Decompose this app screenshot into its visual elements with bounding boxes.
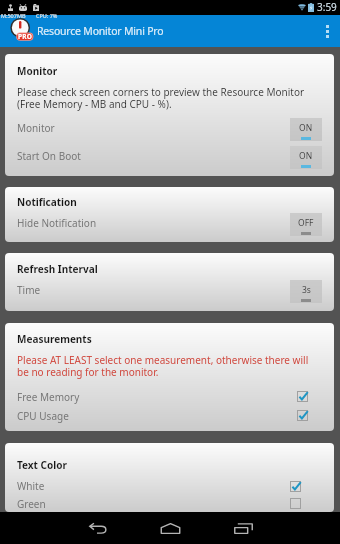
staticText: CPU Usage — [17, 409, 69, 423]
staticText: CPU: 7% — [36, 12, 58, 19]
staticText: ON — [299, 150, 313, 162]
button[interactable]: Home — [145, 512, 195, 544]
button[interactable]: Back — [73, 512, 123, 544]
staticText: Text Color — [17, 458, 67, 472]
button[interactable]: Recent apps — [218, 512, 268, 544]
button[interactable]: White — [5, 477, 334, 497]
button[interactable]: Monitor — [5, 115, 334, 143]
staticText: Notification — [17, 195, 77, 209]
button[interactable]: Hide Notification — [5, 210, 334, 238]
staticText: Hide Notification — [17, 216, 97, 230]
button[interactable]: Start On Boot — [5, 143, 334, 171]
button[interactable]: Time — [5, 277, 334, 305]
staticText: Green — [17, 497, 46, 511]
staticText: 3s — [302, 284, 311, 296]
button[interactable]: More options — [314, 15, 340, 47]
staticText: 3:59 — [317, 0, 337, 12]
staticText: Refresh Interval — [17, 262, 98, 276]
staticText: Please check screen corners to preview t… — [17, 85, 305, 111]
staticText: ON — [299, 122, 313, 134]
button[interactable]: CPU Usage — [5, 407, 334, 426]
staticText: Resource Monitor Mini Pro — [37, 24, 164, 38]
staticText: Measurements — [17, 332, 92, 346]
staticText: Free Memory — [17, 390, 80, 404]
button[interactable]: Free Memory — [5, 388, 334, 407]
button[interactable]: Green — [5, 497, 334, 512]
staticText: White — [17, 479, 45, 493]
staticText: OFF — [298, 217, 314, 229]
staticText: Start On Boot — [17, 149, 81, 163]
staticText: Monitor — [17, 121, 55, 135]
staticText: PRO — [18, 32, 33, 41]
staticText: Please AT LEAST select one measurement, … — [17, 353, 309, 379]
staticText: Monitor — [17, 64, 58, 78]
staticText: Time — [17, 283, 41, 297]
staticText: M:507MB — [1, 12, 26, 19]
